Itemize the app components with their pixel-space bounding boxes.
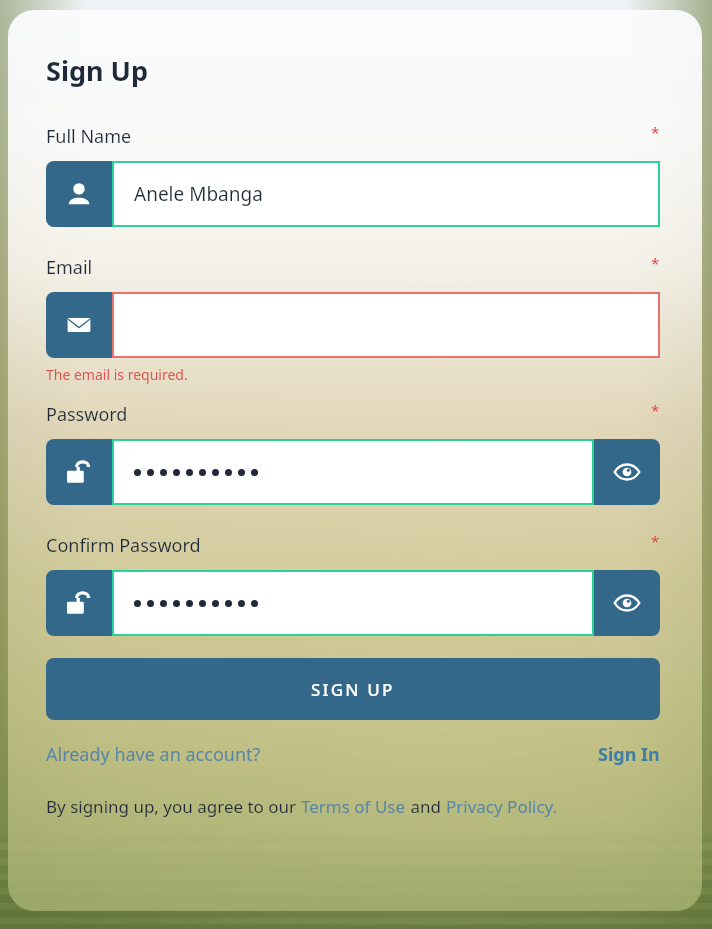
- button[interactable]: Password: [46, 439, 112, 505]
- button[interactable]: Show password: [594, 439, 660, 505]
- staticText: SIGN UP: [311, 678, 395, 701]
- staticText: Full Name: [46, 124, 132, 149]
- staticText: By signing up, you agree to our: [46, 795, 301, 818]
- button[interactable]: SIGN UP: [46, 658, 660, 720]
- staticText: Privacy Policy.: [446, 795, 558, 818]
- staticText: Email: [46, 255, 93, 280]
- staticText: *: [651, 122, 660, 142]
- button[interactable]: Confirm password: [46, 570, 112, 636]
- staticText: The email is required.: [46, 365, 188, 384]
- button[interactable]: Email: [46, 292, 112, 358]
- button[interactable]: Sign In: [598, 742, 660, 767]
- staticText: Terms of Use: [301, 795, 406, 818]
- staticText: Already have an account?: [46, 742, 261, 767]
- staticText: Password: [46, 402, 128, 427]
- button[interactable]: [112, 439, 594, 505]
- staticText: and: [406, 795, 446, 818]
- staticText: *: [651, 531, 660, 551]
- staticText: Sign Up: [46, 52, 149, 89]
- staticText: Sign In: [598, 742, 660, 767]
- staticText: Anele Mbanga: [134, 181, 263, 207]
- button[interactable]: Already have an account?: [46, 742, 261, 767]
- button[interactable]: [112, 570, 594, 636]
- staticText: *: [651, 253, 660, 273]
- button[interactable]: Show password: [594, 570, 660, 636]
- button[interactable]: Anele Mbanga: [112, 161, 660, 227]
- staticText: Confirm Password: [46, 533, 201, 558]
- button[interactable]: Name: [46, 161, 112, 227]
- button[interactable]: Terms of Use: [301, 795, 406, 818]
- button[interactable]: Privacy Policy.: [446, 795, 558, 818]
- staticText: *: [651, 400, 660, 420]
- button[interactable]: [112, 292, 660, 358]
